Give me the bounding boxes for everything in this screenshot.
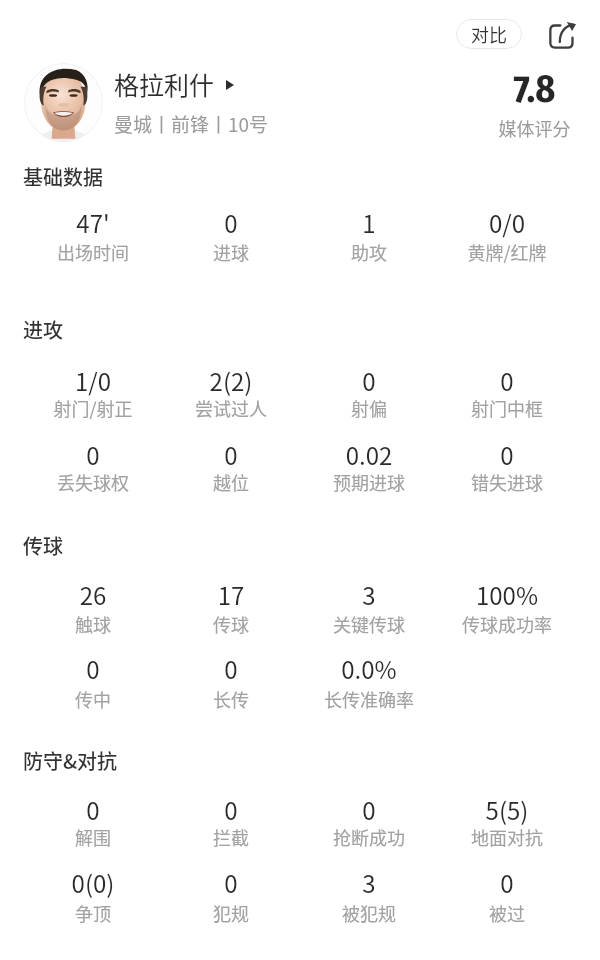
staticText: 进球 <box>162 239 300 265</box>
staticText: 0 <box>300 792 438 827</box>
staticText: 0 <box>24 651 162 686</box>
staticText: 尝试过人 <box>162 395 300 421</box>
staticText: 长传 <box>162 686 300 712</box>
staticText: 犯规 <box>162 900 300 926</box>
staticText: 预期进球 <box>300 469 438 495</box>
staticText: 1 <box>300 205 438 240</box>
staticText: 长传准确率 <box>300 686 438 712</box>
staticText: 助攻 <box>300 239 438 265</box>
staticText: 0 <box>162 651 300 686</box>
staticText: 0/0 <box>438 205 576 240</box>
staticText: 拦截 <box>162 824 300 850</box>
staticText: 越位 <box>162 469 300 495</box>
staticText: 传球 <box>162 611 300 637</box>
staticText: 3 <box>300 577 438 612</box>
staticText: 射偏 <box>300 395 438 421</box>
staticText: 0(0) <box>24 865 162 900</box>
staticText: 0 <box>162 437 300 472</box>
staticText: 0 <box>162 792 300 827</box>
staticText: 0 <box>24 792 162 827</box>
staticText: 0.02 <box>300 437 438 472</box>
staticText: 1/0 <box>24 363 162 398</box>
staticText: 射门/射正 <box>24 395 162 421</box>
staticText: 传球成功率 <box>438 611 576 637</box>
staticText: 0 <box>438 437 576 472</box>
staticText: 触球 <box>24 611 162 637</box>
staticText: 0 <box>162 205 300 240</box>
staticText: 射门中框 <box>438 395 576 421</box>
staticText: 出场时间 <box>24 239 162 265</box>
staticText: 3 <box>300 865 438 900</box>
staticText: 0 <box>162 865 300 900</box>
staticText: 曼城丨前锋丨10号 <box>114 110 269 138</box>
staticText: 传中 <box>24 686 162 712</box>
staticText: 7.8 <box>469 66 600 112</box>
staticText: 媒体评分 <box>469 115 600 141</box>
button[interactable]: 对比 <box>456 19 522 49</box>
staticText: 黄牌/红牌 <box>438 239 576 265</box>
staticText: 丢失球权 <box>24 469 162 495</box>
staticText: 0 <box>24 437 162 472</box>
staticText: 0 <box>438 865 576 900</box>
button[interactable]: Share <box>547 20 577 50</box>
staticText: 争顶 <box>24 900 162 926</box>
staticText: 基础数据 <box>23 162 103 191</box>
staticText: 进攻 <box>23 315 63 344</box>
staticText: 格拉利什 <box>114 66 215 102</box>
staticText: 传球 <box>23 531 63 560</box>
staticText: 100% <box>438 577 576 612</box>
staticText: 26 <box>24 577 162 612</box>
staticText: 对比 <box>471 21 507 47</box>
staticText: 错失进球 <box>438 469 576 495</box>
staticText: 0.0% <box>300 651 438 686</box>
staticText: 0 <box>438 363 576 398</box>
staticText: 5(5) <box>438 792 576 827</box>
staticText: 关键传球 <box>300 611 438 637</box>
staticText: 防守&对抗 <box>23 746 118 775</box>
staticText: 17 <box>162 577 300 612</box>
staticText: 被犯规 <box>300 900 438 926</box>
button[interactable]: Player photo <box>24 63 103 142</box>
staticText: 2(2) <box>162 363 300 398</box>
staticText: 被过 <box>438 900 576 926</box>
staticText: 抢断成功 <box>300 824 438 850</box>
staticText: 0 <box>300 363 438 398</box>
staticText: 解围 <box>24 824 162 850</box>
button[interactable]: 格拉利什 <box>110 62 240 106</box>
staticText: 地面对抗 <box>438 824 576 850</box>
staticText: 47' <box>24 205 162 240</box>
